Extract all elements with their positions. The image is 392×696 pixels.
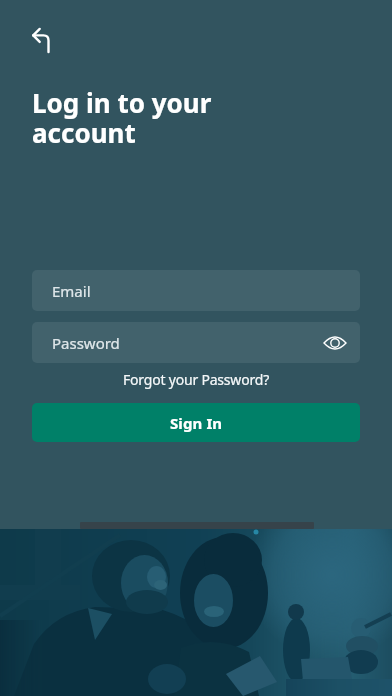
button[interactable] (18, 20, 62, 64)
staticText: Forgot your Password? (123, 370, 270, 389)
staticText: Email (52, 281, 91, 301)
staticText: Log in to your account (32, 85, 212, 151)
button[interactable]: Sign In (32, 403, 360, 442)
button[interactable]: Email (32, 270, 360, 311)
button[interactable]: Password (32, 322, 360, 363)
button[interactable]: Forgot your Password? (0, 367, 392, 391)
staticText: Sign In (170, 413, 223, 433)
staticText: Password (52, 333, 120, 353)
